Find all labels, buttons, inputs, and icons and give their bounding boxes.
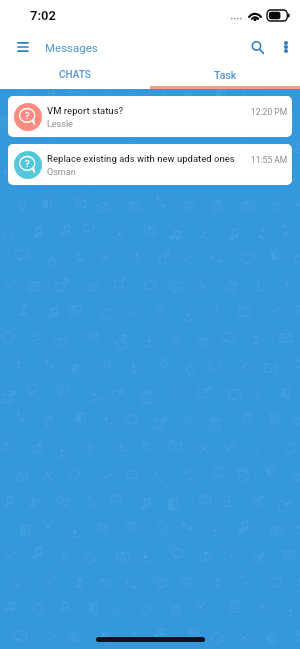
staticText: CHATS — [59, 69, 91, 81]
staticText: 11:55 AM — [251, 155, 288, 165]
staticText: Messages — [45, 41, 98, 54]
staticText: Replace existing ads with new updated on… — [47, 153, 235, 164]
staticText: Lessle — [47, 119, 73, 130]
staticText: ? — [25, 158, 30, 169]
button[interactable]: Search — [244, 34, 270, 60]
button[interactable]: ? — [8, 144, 292, 185]
button[interactable]: Menu — [11, 35, 35, 59]
staticText: 7:02 — [30, 8, 57, 23]
button[interactable]: Task — [150, 64, 300, 86]
staticText: VM report status? — [47, 105, 124, 116]
button[interactable]: More options — [275, 36, 297, 58]
button[interactable]: CHATS — [0, 64, 150, 86]
staticText: ? — [25, 110, 30, 121]
staticText: Osman — [47, 167, 76, 178]
button[interactable]: ? — [8, 96, 292, 137]
staticText: 12:20 PM — [251, 107, 288, 117]
staticText: Task — [214, 69, 237, 81]
